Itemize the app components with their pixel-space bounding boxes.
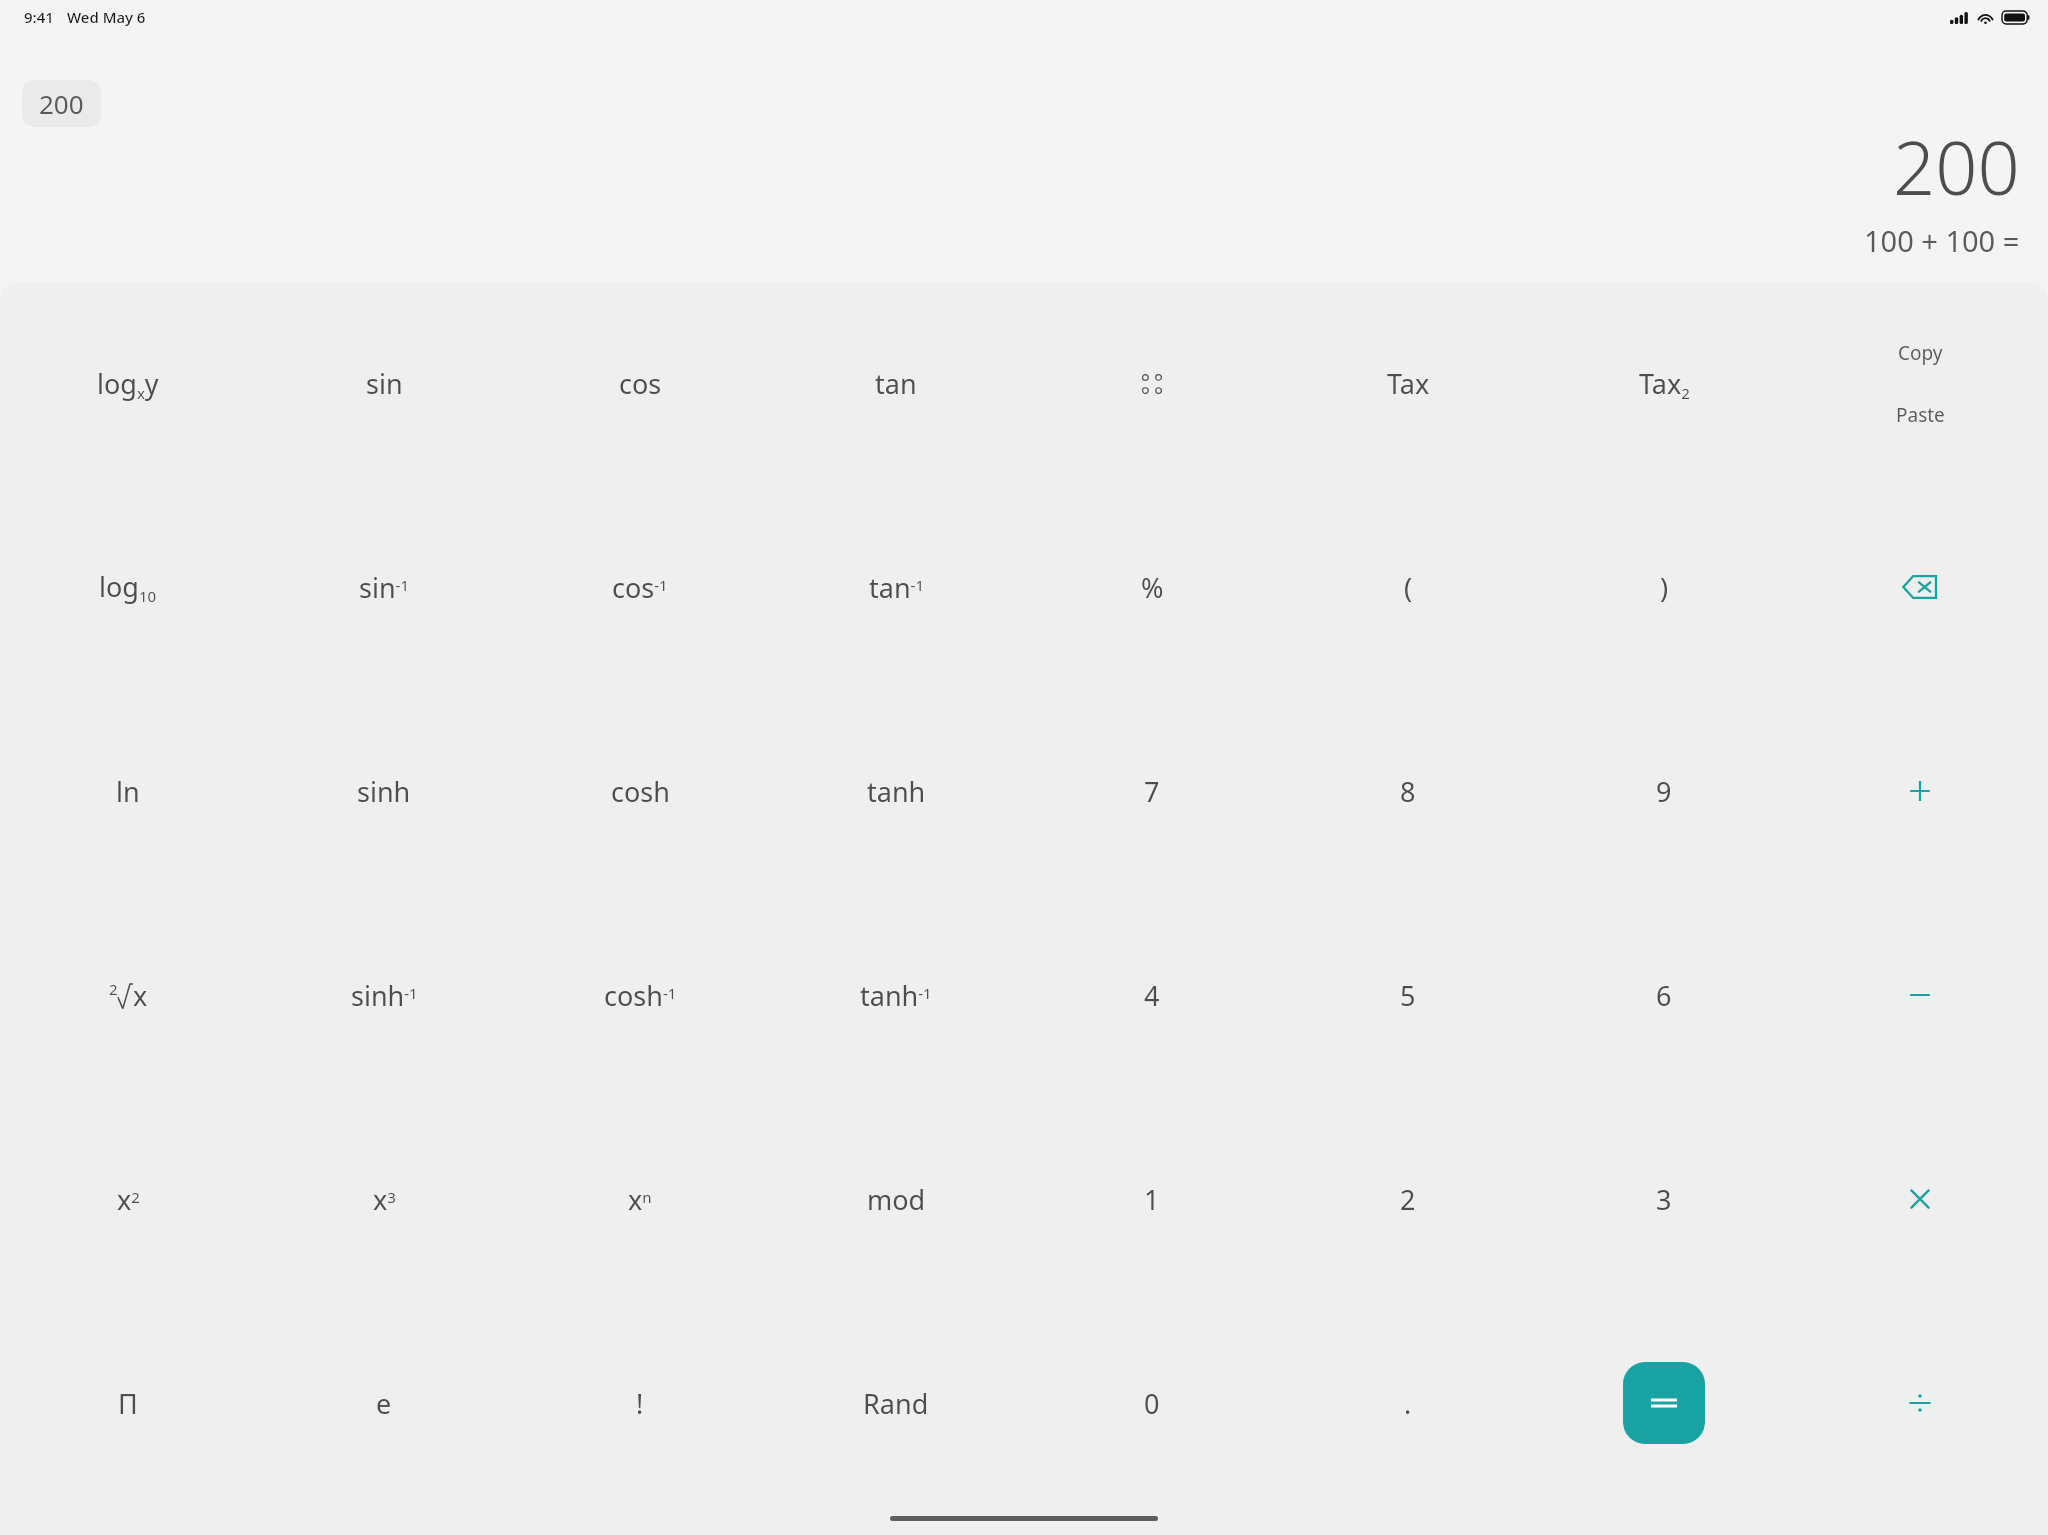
staticText: Rand [863, 1385, 929, 1422]
button[interactable]: Π [0, 1301, 256, 1505]
button[interactable]: ! [512, 1301, 768, 1505]
button[interactable]: sin [256, 282, 512, 485]
button[interactable]: xn [512, 1097, 768, 1301]
staticText: 100 + 100 = [1864, 221, 2020, 260]
button[interactable]: ( [1280, 485, 1536, 689]
button[interactable]: 0 [1024, 1301, 1280, 1505]
staticText: sin-1 [359, 569, 409, 606]
staticText: Π [118, 1385, 138, 1422]
button[interactable]: ln [0, 689, 256, 893]
button[interactable]: logxy [0, 282, 256, 485]
staticText: 2 [1400, 1181, 1416, 1218]
button[interactable]: 200 [22, 80, 101, 127]
staticText: sinh-1 [351, 977, 418, 1014]
button[interactable]: Plus [1792, 689, 2048, 893]
staticText: 1 [1144, 1181, 1160, 1218]
button[interactable]: x2 [0, 1097, 256, 1301]
button[interactable]: cosh [512, 689, 768, 893]
button[interactable]: Square root [0, 893, 256, 1097]
staticText: 9 [1656, 773, 1672, 810]
staticText: e [376, 1385, 392, 1422]
staticText: ! [636, 1385, 644, 1422]
button[interactable]: sin-1 [256, 485, 512, 689]
button[interactable]: More functions [1024, 282, 1280, 485]
staticText: 3 [1656, 1181, 1672, 1218]
staticText: 7 [1144, 773, 1160, 810]
button[interactable]: Minus [1792, 893, 2048, 1097]
button[interactable]: Equals [1623, 1362, 1705, 1444]
button[interactable]: cos-1 [512, 485, 768, 689]
staticText: 200 [1893, 116, 2020, 217]
button[interactable]: 3 [1536, 1097, 1792, 1301]
staticText: 4 [1144, 977, 1160, 1014]
staticText: logxy [97, 365, 159, 403]
staticText: 5 [1400, 977, 1416, 1014]
staticText: 8 [1400, 773, 1416, 810]
button[interactable]: 5 [1280, 893, 1536, 1097]
button[interactable]: sinh [256, 689, 512, 893]
staticText: mod [867, 1181, 926, 1218]
staticText: ( [1404, 569, 1413, 606]
staticText: Tax [1387, 365, 1430, 402]
staticText: x3 [373, 1181, 396, 1218]
button[interactable]: tan [768, 282, 1024, 485]
staticText: 6 [1656, 977, 1672, 1014]
button[interactable]: cos [512, 282, 768, 485]
button[interactable]: tan-1 [768, 485, 1024, 689]
staticText: x2 [117, 1181, 140, 1218]
staticText: 0 [1144, 1385, 1160, 1422]
button[interactable]: e [256, 1301, 512, 1505]
staticText: sinh [357, 773, 411, 810]
staticText: xn [628, 1181, 652, 1218]
button[interactable]: ) [1536, 485, 1792, 689]
staticText: cosh [611, 773, 670, 810]
staticText: ) [1660, 569, 1669, 606]
staticText: cosh-1 [604, 977, 677, 1014]
button[interactable]: log10 [0, 485, 256, 689]
button[interactable]: 7 [1024, 689, 1280, 893]
button[interactable]: Tax [1280, 282, 1536, 485]
staticText: sin [366, 365, 403, 402]
button[interactable]: Divide [1792, 1301, 2048, 1505]
staticText: cos [619, 365, 662, 402]
staticText: tan-1 [869, 569, 924, 606]
staticText: log10 [99, 568, 157, 606]
staticText: 2 [109, 979, 118, 999]
staticText: Paste [1896, 402, 1945, 428]
button[interactable]: Copy [1884, 334, 1957, 372]
button[interactable]: mod [768, 1097, 1024, 1301]
staticText: Copy [1898, 340, 1943, 366]
button[interactable]: 6 [1536, 893, 1792, 1097]
button[interactable]: Rand [768, 1301, 1024, 1505]
button[interactable]: 2 [1280, 1097, 1536, 1301]
button[interactable]: 9 [1536, 689, 1792, 893]
staticText: tan [875, 365, 917, 402]
button[interactable]: 4 [1024, 893, 1280, 1097]
staticText: x [133, 977, 148, 1014]
button[interactable]: cosh-1 [512, 893, 768, 1097]
staticText: % [1141, 569, 1164, 606]
staticText: ln [116, 773, 140, 810]
staticText: cos-1 [612, 569, 668, 606]
button[interactable]: Tax2 [1536, 282, 1792, 485]
button[interactable]: Paste [1882, 396, 1959, 434]
button[interactable]: 1 [1024, 1097, 1280, 1301]
button[interactable]: tanh [768, 689, 1024, 893]
staticText: 200 [39, 86, 84, 121]
staticText: 9:41 [24, 7, 54, 27]
button[interactable]: Multiply [1792, 1097, 2048, 1301]
staticText: tanh-1 [860, 977, 932, 1014]
staticText: Wed May 6 [67, 7, 146, 27]
staticText: . [1404, 1385, 1412, 1422]
staticText: tanh [867, 773, 926, 810]
staticText: Tax2 [1639, 365, 1690, 403]
button[interactable]: sinh-1 [256, 893, 512, 1097]
button[interactable]: x3 [256, 1097, 512, 1301]
button[interactable]: 8 [1280, 689, 1536, 893]
button[interactable]: % [1024, 485, 1280, 689]
button[interactable]: Backspace [1792, 485, 2048, 689]
button[interactable]: tanh-1 [768, 893, 1024, 1097]
